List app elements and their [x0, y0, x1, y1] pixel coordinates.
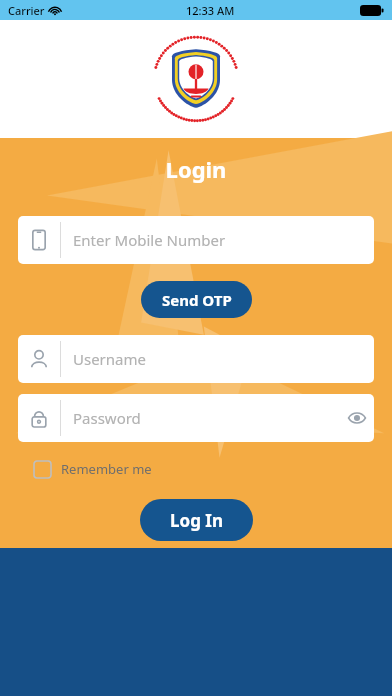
staticText: Login — [0, 154, 392, 184]
staticText: Username — [73, 349, 146, 369]
staticText: Password — [73, 408, 141, 428]
button[interactable]: Log In — [140, 499, 253, 541]
staticText: Enter Mobile Number — [73, 230, 226, 250]
button[interactable]: Username — [18, 335, 374, 383]
button[interactable]: Enter Mobile Number — [18, 216, 374, 264]
staticText: Log In — [170, 509, 223, 532]
button[interactable]: Remember me — [30, 456, 156, 482]
button[interactable]: Password — [18, 394, 374, 442]
button[interactable]: Send OTP — [141, 281, 252, 318]
staticText: Send OTP — [162, 290, 232, 310]
staticText: Carrier — [8, 3, 45, 18]
button[interactable]: Show password — [340, 394, 374, 442]
staticText: 12:33 AM — [186, 3, 235, 18]
staticText: Remember me — [61, 460, 152, 478]
